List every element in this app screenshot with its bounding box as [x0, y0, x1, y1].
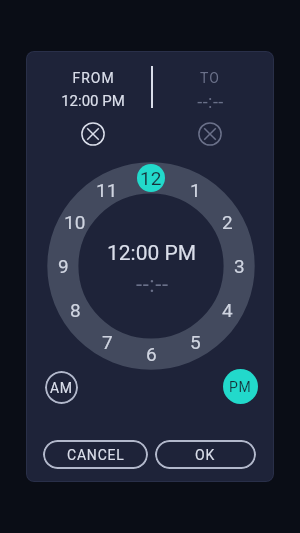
- staticText: PM: [229, 379, 252, 395]
- button[interactable]: 1: [181, 176, 209, 204]
- staticText: TO: [200, 70, 220, 86]
- staticText: 12:00 PM: [61, 92, 125, 110]
- staticText: 2: [222, 211, 233, 233]
- button[interactable]: 12: [137, 164, 165, 192]
- staticText: 12: [140, 167, 162, 189]
- staticText: 8: [70, 299, 81, 321]
- button[interactable]: 5: [181, 328, 209, 356]
- staticText: 11: [96, 179, 118, 201]
- button[interactable]: FROM: [38, 67, 148, 89]
- staticText: 3: [234, 255, 245, 277]
- button[interactable]: 7: [93, 328, 121, 356]
- staticText: 4: [222, 299, 233, 321]
- button[interactable]: 12:00 PM: [38, 90, 148, 112]
- staticText: 10: [64, 211, 86, 233]
- button[interactable]: Clear FROM time: [81, 122, 105, 146]
- staticText: 5: [190, 331, 201, 353]
- button[interactable]: CANCEL: [43, 440, 148, 469]
- staticText: --:--: [197, 91, 224, 112]
- button[interactable]: PM: [223, 369, 258, 404]
- staticText: OK: [195, 447, 216, 463]
- staticText: 12:00 PM: [107, 241, 197, 266]
- button[interactable]: 11: [93, 176, 121, 204]
- button[interactable]: 3: [225, 252, 253, 280]
- button[interactable]: --:--: [155, 90, 265, 112]
- staticText: FROM: [72, 70, 115, 86]
- staticText: CANCEL: [67, 447, 125, 463]
- button[interactable]: Clear TO time: [198, 122, 222, 146]
- button[interactable]: TO: [155, 67, 265, 89]
- staticText: 9: [58, 255, 69, 277]
- staticText: 7: [102, 331, 113, 353]
- button[interactable]: 4: [213, 296, 241, 324]
- button[interactable]: 6: [137, 340, 165, 368]
- button[interactable]: 10: [61, 208, 89, 236]
- button[interactable]: 2: [213, 208, 241, 236]
- staticText: AM: [50, 380, 73, 396]
- staticText: --:--: [136, 272, 169, 298]
- button[interactable]: 8: [61, 296, 89, 324]
- button[interactable]: OK: [155, 440, 256, 469]
- staticText: 6: [146, 343, 157, 365]
- button[interactable]: AM: [45, 371, 78, 404]
- button[interactable]: 9: [49, 252, 77, 280]
- staticText: 1: [190, 179, 201, 201]
